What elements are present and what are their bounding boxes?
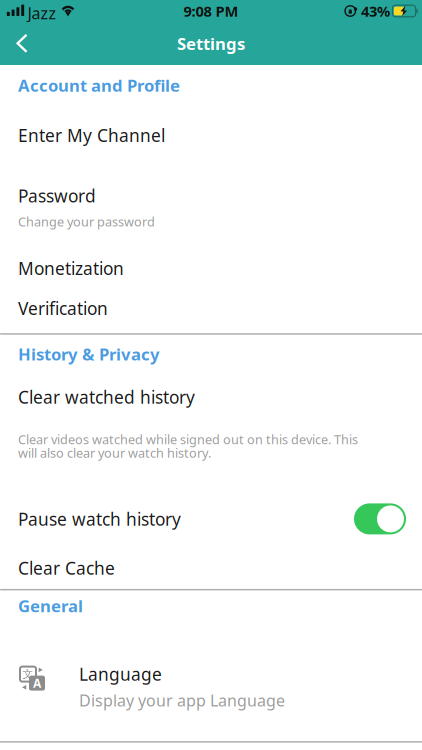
staticText: Jazz — [28, 2, 57, 24]
button[interactable]: Pause watch history — [354, 503, 406, 534]
staticText: 文 — [22, 667, 33, 681]
staticText: Account and Profile — [18, 74, 180, 97]
staticText: Settings — [177, 32, 245, 55]
button[interactable]: Clear Cache — [0, 556, 422, 579]
button[interactable]: Back — [0, 22, 44, 65]
staticText: Language — [79, 662, 162, 686]
button[interactable]: Verification — [0, 297, 422, 320]
staticText: History & Privacy — [18, 343, 160, 365]
button[interactable]: Monetization — [0, 257, 422, 280]
staticText: Clear watched history — [18, 385, 195, 409]
staticText: Change your password — [18, 213, 155, 230]
staticText: will also clear your watch history. — [18, 444, 211, 462]
staticText: Pause watch history — [18, 507, 181, 531]
staticText: 43% — [361, 1, 390, 21]
staticText: 9:08 PM — [183, 1, 238, 21]
staticText: Monetization — [18, 256, 124, 280]
staticText: A — [33, 675, 41, 691]
button[interactable]: Password — [0, 184, 422, 229]
button[interactable]: Clear watched history — [0, 385, 422, 408]
staticText: General — [18, 594, 83, 617]
button[interactable]: 文 — [0, 663, 422, 711]
staticText: Verification — [18, 296, 108, 320]
staticText: Display your app Language — [79, 689, 285, 711]
staticText: Enter My Channel — [18, 123, 165, 147]
button[interactable]: Enter My Channel — [0, 124, 422, 147]
staticText: Clear videos watched while signed out on… — [18, 431, 358, 448]
staticText: Clear Cache — [18, 556, 115, 580]
staticText: Password — [18, 184, 96, 207]
